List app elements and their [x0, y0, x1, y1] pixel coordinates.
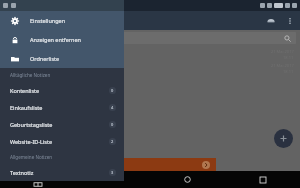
staticText: Anzeigen entfernen	[30, 36, 81, 43]
button[interactable]: Anzeigen entfernen	[0, 30, 124, 49]
button[interactable]: Ordnerliste	[0, 49, 124, 68]
staticText: Alltägliche Notizen	[10, 72, 51, 78]
staticText: Kontenliste	[10, 87, 40, 94]
staticText: Ordnerliste	[30, 55, 60, 62]
button[interactable]: Search	[4, 32, 296, 44]
button[interactable]: Kontenliste	[0, 82, 124, 99]
staticText: 0	[111, 122, 114, 127]
button[interactable]: More options	[284, 15, 296, 27]
button[interactable]: Home	[150, 171, 225, 188]
staticText: 0	[111, 88, 114, 93]
button[interactable]: Website-ID-Liste	[0, 133, 124, 150]
button[interactable]: Textnotiz	[0, 164, 124, 181]
staticText: Einstellungen	[30, 17, 66, 24]
button[interactable]: Einstellungen	[0, 11, 124, 30]
other: Search	[283, 34, 291, 42]
button[interactable]: Cloud sync	[264, 14, 278, 28]
staticText: 4	[111, 105, 114, 110]
button[interactable]: Einkaufsliste	[0, 99, 124, 116]
button[interactable]: Open	[202, 161, 210, 169]
button[interactable]: Back	[75, 171, 150, 188]
button[interactable]: Add note	[274, 129, 293, 148]
staticText: Einkaufsliste	[10, 104, 43, 111]
button[interactable]: Eröffne Aufbewahrung	[0, 158, 216, 171]
button[interactable]: Overview	[225, 171, 300, 188]
staticText: 3	[111, 170, 114, 175]
staticText: Website-ID-Liste	[10, 138, 53, 145]
button[interactable]: Recent apps	[0, 181, 75, 188]
staticText: Geburtstagsliste	[10, 121, 53, 128]
staticText: 2	[111, 139, 114, 144]
staticText: Textnotiz	[10, 169, 34, 176]
button[interactable]: Recent apps	[0, 171, 75, 188]
staticText: Allgemeine Notizen	[10, 154, 53, 160]
button[interactable]: Geburtstagsliste	[0, 116, 124, 133]
